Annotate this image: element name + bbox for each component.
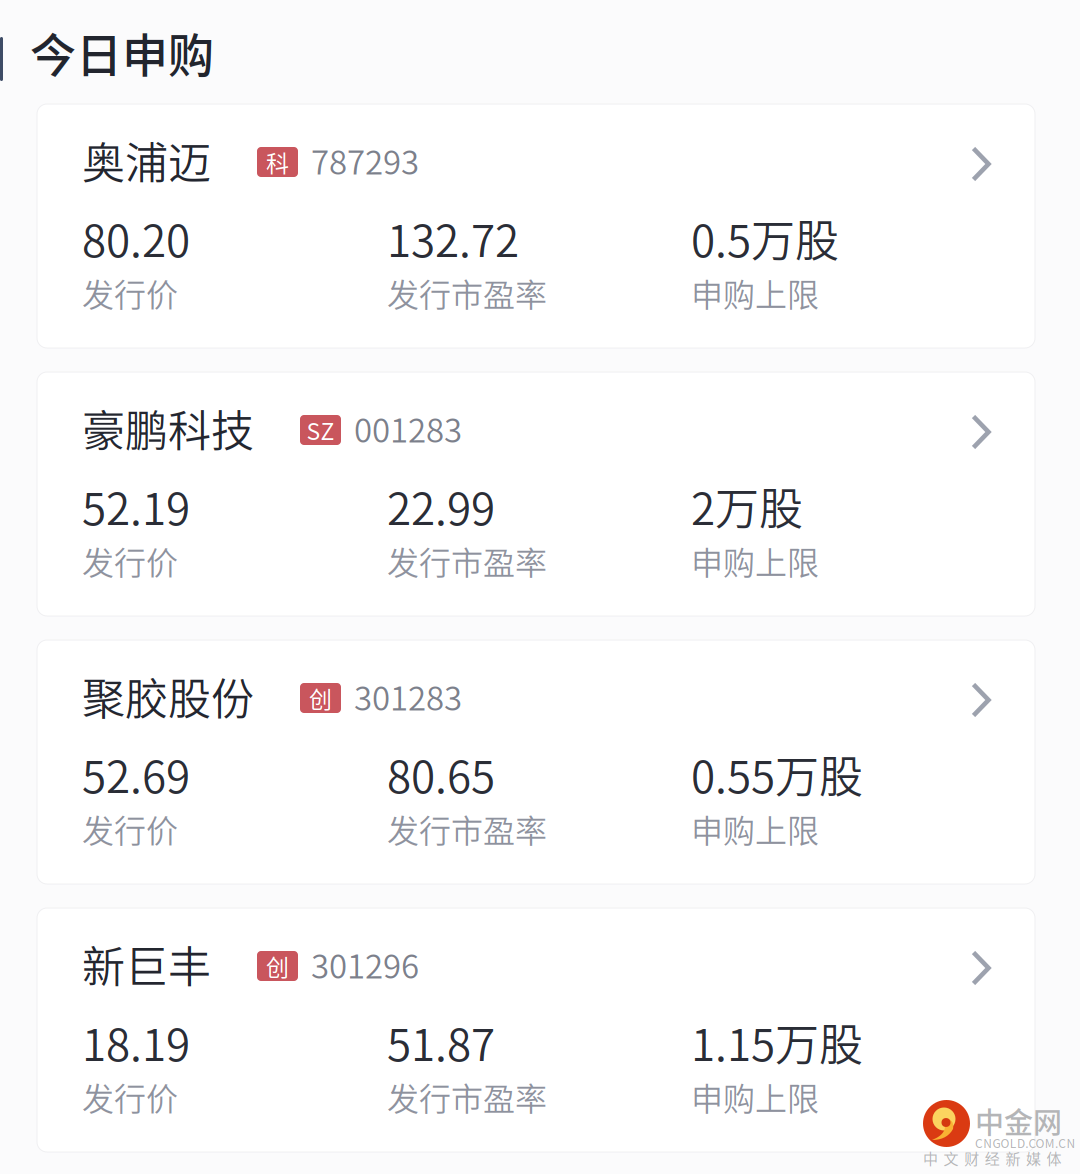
staticText: 0.55万股 [691, 742, 863, 806]
staticText: 财 [964, 1147, 979, 1169]
staticText: 发行市盈率 [387, 270, 547, 316]
staticText: 中 [923, 1147, 938, 1169]
staticText: 001283 [354, 404, 462, 452]
staticText: 创 [309, 681, 332, 715]
staticText: 0.5万股 [691, 206, 839, 270]
staticText: 经 [985, 1147, 1000, 1169]
staticText: 301283 [354, 672, 462, 720]
button[interactable]: 奥浦迈 [37, 104, 1035, 348]
staticText: 发行市盈率 [387, 1074, 547, 1120]
staticText: 新 [1005, 1147, 1020, 1169]
staticText: 22.99 [387, 474, 495, 538]
button[interactable]: 新巨丰 [37, 908, 1035, 1152]
staticText: SZ [306, 413, 334, 447]
staticText: 80.20 [82, 206, 190, 270]
staticText: 申购上限 [691, 1074, 819, 1120]
staticText: 1.15万股 [691, 1010, 863, 1074]
staticText: CNGOLD.COM.CN [975, 1134, 1075, 1151]
staticText: 787293 [311, 136, 419, 184]
staticText: 52.19 [82, 474, 190, 538]
staticText: 发行价 [82, 1074, 178, 1120]
staticText: 51.87 [387, 1010, 495, 1074]
staticText: 301296 [311, 940, 419, 988]
staticText: 新巨丰 [82, 933, 211, 995]
staticText: 申购上限 [691, 270, 819, 316]
staticText: 豪鹏科技 [82, 397, 254, 459]
staticText: 申购上限 [691, 538, 819, 584]
staticText: 18.19 [82, 1010, 190, 1074]
staticText: 发行价 [82, 806, 178, 852]
staticText: 发行价 [82, 538, 178, 584]
staticText: 科 [266, 145, 289, 179]
staticText: 发行市盈率 [387, 806, 547, 852]
staticText: 52.69 [82, 742, 190, 806]
staticText: 发行市盈率 [387, 538, 547, 584]
staticText: 中金网 [975, 1100, 1062, 1142]
staticText: 申购上限 [691, 806, 819, 852]
staticText: 发行价 [82, 270, 178, 316]
staticText: 聚胶股份 [82, 665, 254, 727]
staticText: 今日申购 [30, 19, 214, 85]
staticText: 媒 [1026, 1147, 1041, 1169]
button[interactable]: 豪鹏科技 [37, 372, 1035, 616]
staticText: 2万股 [691, 474, 803, 538]
staticText: 奥浦迈 [82, 129, 211, 191]
staticText: 体 [1047, 1147, 1062, 1169]
staticText: 文 [944, 1147, 959, 1169]
staticText: 创 [266, 949, 289, 983]
staticText: 132.72 [387, 206, 519, 270]
button[interactable]: 聚胶股份 [37, 640, 1035, 884]
staticText: 80.65 [387, 742, 495, 806]
